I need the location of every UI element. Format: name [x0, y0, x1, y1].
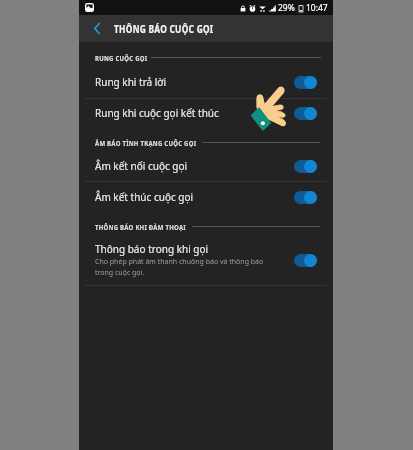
staticText: Âm kết thúc cuộc gọi [95, 190, 294, 204]
button[interactable]: Âm kết nối cuộc gọi [79, 151, 333, 181]
button[interactable]: Thông báo trong khi gọi [79, 235, 333, 285]
staticText: 10:47 [306, 2, 328, 14]
button[interactable]: Âm kết thúc cuộc gọi [79, 182, 333, 212]
staticText: Rung khi cuộc gọi kết thúc [95, 106, 294, 120]
button[interactable]: Back [79, 15, 114, 42]
staticText: THÔNG BÁO KHI ĐÀM THOẠI [95, 223, 186, 233]
staticText: THÔNG BÁO CUỘC GỌI [114, 22, 214, 36]
button[interactable]: Toggle [294, 107, 317, 120]
staticText: Cho phép phát âm thanh chuông báo và thô… [95, 257, 264, 277]
button[interactable]: Rung khi cuộc gọi kết thúc [79, 99, 333, 127]
button[interactable]: Toggle [294, 76, 317, 89]
staticText: ÂM BÁO TÌNH TRẠNG CUỘC GỌI [95, 139, 197, 149]
button[interactable]: Toggle [294, 160, 317, 173]
staticText: 29% [278, 2, 295, 14]
staticText: Rung khi trả lời [95, 75, 294, 89]
button[interactable]: Toggle [294, 191, 317, 204]
button[interactable]: Toggle [294, 254, 317, 267]
staticText: Thông báo trong khi gọi [95, 242, 209, 256]
button[interactable]: Rung khi trả lời [79, 66, 333, 98]
staticText: RUNG CUỘC GỌI [95, 54, 148, 64]
staticText: Âm kết nối cuộc gọi [95, 159, 294, 173]
